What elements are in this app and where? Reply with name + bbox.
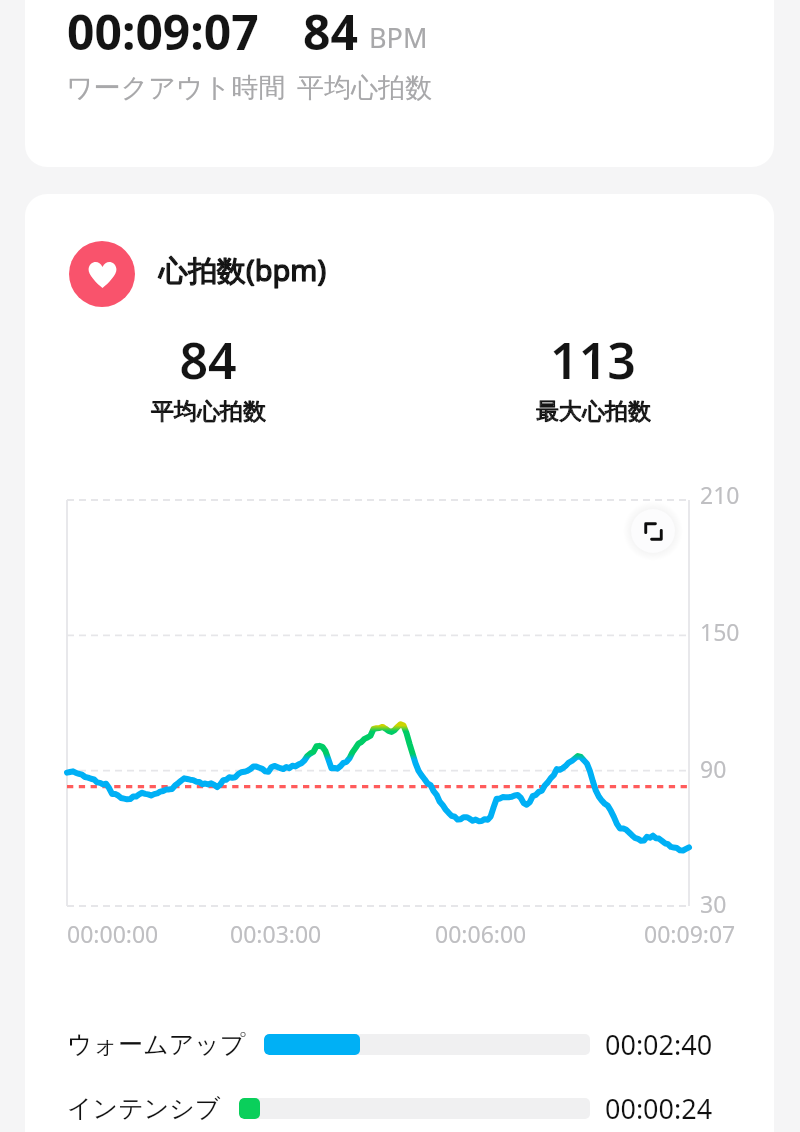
staticText: 平均心拍数 bbox=[151, 397, 266, 426]
button[interactable]: 113 bbox=[493, 326, 693, 426]
button[interactable]: Expand chart bbox=[631, 509, 675, 553]
staticText: 最大心拍数 bbox=[536, 397, 651, 426]
staticText: 30 bbox=[700, 888, 727, 919]
button[interactable]: 84 bbox=[108, 326, 308, 426]
staticText: 00:09:07 bbox=[67, 0, 259, 64]
staticText: 最大心拍数 bbox=[536, 397, 651, 426]
staticText: BPM bbox=[369, 19, 428, 56]
staticText: 00:00:00 bbox=[67, 918, 159, 949]
staticText: 平均心拍数 bbox=[151, 397, 266, 426]
staticText: ウォームアップ bbox=[67, 1029, 246, 1060]
staticText: インテンシブ bbox=[67, 1093, 221, 1124]
staticText: 210 bbox=[700, 479, 740, 510]
button[interactable]: インテンシブ bbox=[67, 1086, 713, 1130]
staticText: 00:02:40 bbox=[605, 1026, 713, 1063]
staticText: 84 bbox=[179, 326, 237, 394]
staticText: 90 bbox=[700, 753, 727, 784]
staticText: 平均心拍数 bbox=[297, 71, 432, 105]
button[interactable]: 心拍数(bpm) bbox=[69, 241, 327, 307]
staticText: 84 bbox=[303, 0, 358, 64]
staticText: 00:06:00 bbox=[435, 918, 527, 949]
staticText: 113 bbox=[550, 326, 636, 394]
staticText: 00:03:00 bbox=[230, 918, 322, 949]
staticText: 00:00:24 bbox=[605, 1090, 713, 1127]
staticText: 150 bbox=[700, 616, 740, 647]
staticText: 心拍数(bpm) bbox=[159, 250, 327, 290]
staticText: 00:09:07 bbox=[644, 918, 736, 949]
staticText: ワークアウト時間 bbox=[66, 71, 286, 105]
button[interactable]: ウォームアップ bbox=[67, 1022, 713, 1066]
staticText: 心拍数(bpm) bbox=[159, 250, 327, 290]
